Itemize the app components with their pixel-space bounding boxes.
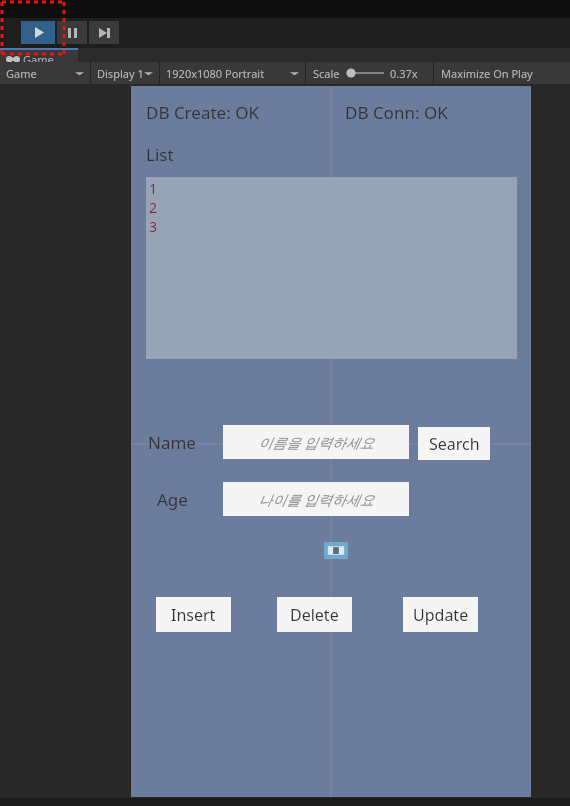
staticText: 0.37x — [390, 66, 418, 81]
button[interactable]: Scale — [306, 62, 433, 84]
staticText: Game — [23, 52, 54, 67]
staticText: Scale — [313, 66, 340, 81]
staticText: Update — [413, 604, 469, 626]
button[interactable]: Display 1 — [91, 62, 159, 84]
button[interactable]: Play — [21, 21, 55, 44]
button[interactable]: 나이를 입력하세요 — [223, 482, 409, 516]
button[interactable]: Update — [403, 597, 478, 632]
button[interactable]: Step — [89, 21, 119, 44]
staticText: Game — [6, 66, 37, 81]
staticText: Maximize On Play — [441, 66, 533, 81]
staticText: Display 1 — [97, 66, 144, 81]
button[interactable]: Pause — [57, 21, 87, 44]
button[interactable]: Game — [0, 48, 78, 70]
staticText: Name — [148, 431, 196, 454]
staticText: 1 — [149, 179, 158, 198]
button[interactable]: Game — [0, 62, 90, 84]
staticText: Age — [157, 488, 188, 511]
button[interactable]: Insert — [156, 597, 231, 632]
button[interactable]: 1920x1080 Portrait — [160, 62, 305, 84]
staticText: 이름을 입력하세요 — [258, 433, 374, 452]
staticText: Delete — [290, 604, 339, 626]
staticText: List — [146, 143, 174, 166]
button[interactable]: Maximize On Play — [434, 62, 533, 84]
staticText: 3 — [149, 217, 158, 236]
button[interactable]: Delete — [277, 597, 352, 632]
staticText: Insert — [171, 604, 216, 626]
staticText: DB Conn: OK — [345, 101, 448, 124]
button[interactable]: Search — [418, 427, 490, 460]
staticText: 1920x1080 Portrait — [166, 66, 265, 81]
staticText: DB Create: OK — [146, 101, 259, 124]
button[interactable]: 1 — [146, 177, 517, 359]
staticText: 2 — [149, 198, 158, 217]
staticText: Search — [429, 433, 480, 455]
button[interactable]: 이름을 입력하세요 — [223, 425, 409, 459]
staticText: 나이를 입력하세요 — [258, 490, 374, 509]
